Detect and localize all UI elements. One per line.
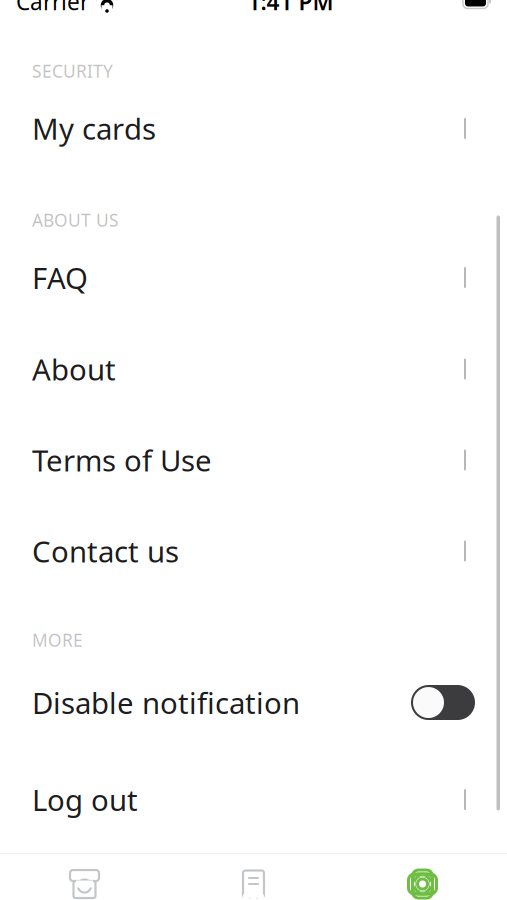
button[interactable]: My cards — [0, 82, 507, 174]
staticText: 1:41 PM — [247, 0, 333, 16]
staticText: Terms of Use — [32, 440, 212, 479]
staticText: My cards — [32, 109, 156, 148]
button[interactable]: Log out — [0, 753, 507, 845]
staticText: About — [32, 349, 116, 388]
button[interactable]: Disable notification — [0, 651, 507, 753]
button[interactable]: Terms of Use — [0, 414, 507, 505]
staticText: Log out — [32, 780, 138, 819]
button[interactable]: Contact us — [0, 505, 507, 596]
staticText: ABOUT US — [32, 208, 119, 231]
staticText: Carrier — [16, 0, 89, 16]
button[interactable]: FAQ — [0, 231, 507, 323]
staticText: Disable notification — [32, 683, 300, 722]
staticText: FAQ — [32, 258, 88, 297]
staticText: MORE — [32, 628, 83, 651]
staticText: Contact us — [32, 531, 179, 570]
button[interactable]: Shop — [0, 854, 169, 900]
button[interactable]: About — [0, 323, 507, 414]
button[interactable]: Settings — [338, 854, 507, 900]
button[interactable]: Orders — [169, 854, 338, 900]
staticText: SECURITY — [32, 59, 113, 82]
